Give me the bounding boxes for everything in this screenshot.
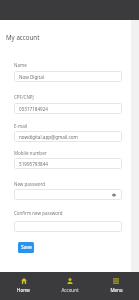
- button[interactable]: nowdigital.app@gmail.com: [14, 131, 122, 142]
- staticText: 05317184924: [19, 106, 48, 112]
- staticText: Menu: [110, 287, 123, 293]
- button[interactable]: Now Digital: [14, 71, 122, 82]
- button[interactable]: Account: [47, 272, 93, 300]
- button[interactable]: Show password: [14, 189, 122, 200]
- staticText: New password: [14, 181, 45, 187]
- staticText: nowdigital.app@gmail.com: [19, 134, 78, 140]
- button[interactable]: Show password: [109, 190, 118, 199]
- staticText: Now Digital: [19, 74, 44, 80]
- button[interactable]: Home: [0, 272, 47, 300]
- staticText: My account: [6, 33, 40, 41]
- button[interactable]: Save: [18, 242, 34, 253]
- staticText: Confirm new password: [14, 210, 63, 216]
- staticText: 51995793844: [19, 161, 48, 167]
- staticText: Home: [17, 287, 30, 293]
- staticText: Name: [14, 62, 27, 68]
- staticText: CPF/CNPJ: [14, 94, 34, 100]
- button[interactable]: 05317184924: [14, 103, 122, 114]
- button[interactable]: Menu: [93, 272, 139, 300]
- button[interactable]: 51995793844: [14, 158, 122, 169]
- staticText: E-mail: [14, 123, 28, 129]
- staticText: Save: [21, 244, 32, 251]
- button[interactable]: [14, 221, 122, 232]
- staticText: Account: [61, 287, 79, 293]
- staticText: Mobile number: [14, 150, 47, 156]
